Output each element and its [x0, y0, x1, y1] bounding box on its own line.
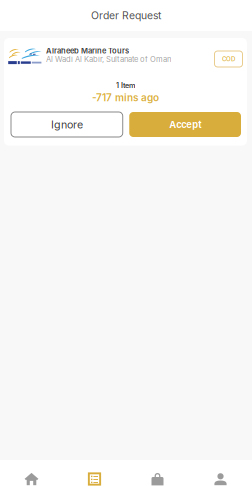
staticText: Ignore	[51, 118, 83, 131]
button[interactable]: Home	[0, 460, 63, 495]
staticText: Alraheeb Marine Tours	[46, 46, 129, 55]
staticText: 1 Item	[116, 81, 135, 90]
staticText: Al Wadi Al Kabir, Sultanate of Oman	[46, 55, 171, 64]
staticText: Accept	[169, 119, 201, 130]
button[interactable]: Products	[126, 460, 189, 495]
staticText: Order Request	[91, 9, 161, 22]
button[interactable]: Ignore	[11, 112, 123, 137]
staticText: COD	[222, 55, 235, 63]
button[interactable]: Accept	[129, 112, 241, 137]
button[interactable]: Profile	[189, 460, 252, 495]
button[interactable]: Orders	[63, 460, 126, 495]
staticText: -717 mins ago	[92, 91, 159, 104]
